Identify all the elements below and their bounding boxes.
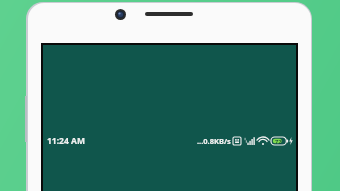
staticText: 72 [275, 138, 282, 145]
staticText: ...0.8KB/s [197, 136, 231, 146]
staticText: 11:24 AM [47, 135, 85, 147]
